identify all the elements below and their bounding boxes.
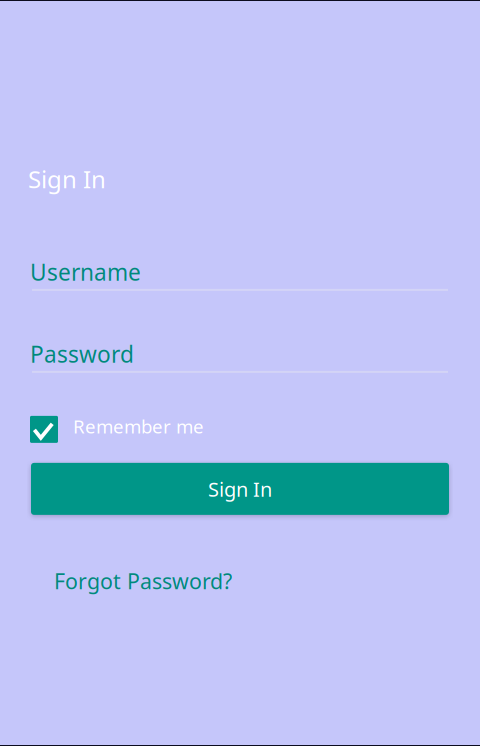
staticText: Remember me — [73, 414, 204, 439]
button[interactable]: Remember me — [0, 410, 222, 449]
staticText: Password — [30, 339, 134, 369]
button[interactable]: Username — [0, 257, 480, 291]
staticText: Sign In — [28, 163, 106, 195]
button[interactable]: Password — [0, 339, 480, 373]
staticText: Username — [30, 257, 141, 287]
button[interactable]: Forgot Password? — [46, 560, 240, 602]
staticText: Sign In — [208, 476, 272, 502]
staticText: Forgot Password? — [54, 567, 232, 595]
button[interactable]: Sign In — [31, 463, 449, 515]
